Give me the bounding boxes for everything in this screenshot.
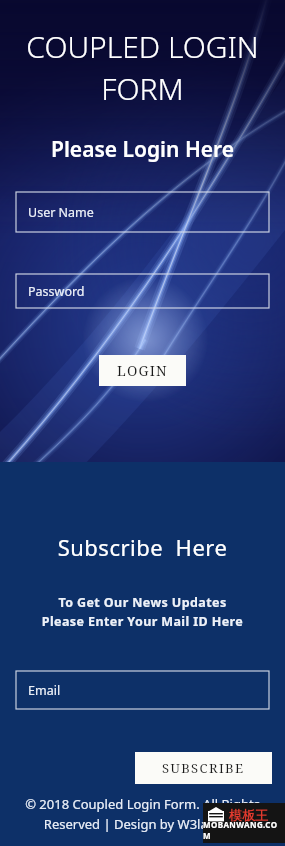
button[interactable]: Email [16,671,269,709]
staticText: COUPLED LOGIN FORM [6,26,279,109]
staticText: SUBSCRIBE [162,759,245,777]
staticText: Email [28,682,61,699]
staticText: Password [28,283,85,300]
staticText: LOGIN [117,361,168,380]
button[interactable]: User Name [16,192,269,232]
staticText: Subscribe Here [0,532,285,562]
staticText: 模板王 [229,807,268,823]
button[interactable]: SUBSCRIBE [135,752,272,784]
staticText: © 2018 Coupled Login Form. All Rights Re… [2,795,283,833]
staticText: Please Login Here [0,135,285,164]
button[interactable]: Password [16,274,269,308]
button[interactable]: LOGIN [99,355,186,386]
staticText: MOBANWANG.COM [203,819,285,841]
staticText: To Get Our News Updates Please Enter You… [0,594,285,630]
staticText: User Name [28,204,94,221]
